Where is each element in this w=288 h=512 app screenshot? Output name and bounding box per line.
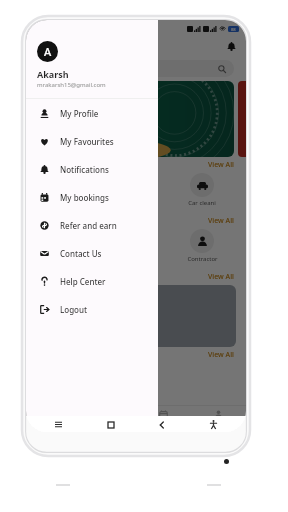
staticText: Home: [45, 421, 63, 429]
button[interactable]: Logout: [26, 295, 158, 323]
staticText: View All: [208, 160, 234, 170]
button[interactable]: Painter: [44, 173, 96, 207]
button[interactable]: View All: [208, 272, 234, 282]
button[interactable]: My Profile: [26, 99, 158, 127]
button[interactable]: [38, 60, 234, 77]
button[interactable]: Notifications: [26, 155, 158, 183]
staticText: Account: [207, 421, 230, 429]
button[interactable]: View All: [208, 216, 234, 226]
staticText: Contact Us: [60, 248, 102, 259]
staticText: Notifications: [60, 164, 109, 175]
staticText: My Favourites: [60, 136, 114, 147]
staticText: View All: [208, 272, 234, 282]
button[interactable]: Home: [26, 410, 81, 429]
button[interactable]: This Weekend: [36, 81, 234, 157]
button[interactable]: Back: [155, 418, 168, 431]
button[interactable]: [36, 285, 133, 347]
staticText: View All: [208, 216, 234, 226]
button[interactable]: View All: [208, 160, 234, 170]
button[interactable]: Home: [104, 418, 117, 431]
button[interactable]: Bookings: [136, 410, 191, 429]
button[interactable]: View All: [208, 350, 234, 360]
button[interactable]: Account: [191, 410, 246, 429]
button[interactable]: Plumber: [44, 229, 96, 263]
staticText: Help Center: [60, 276, 106, 287]
staticText: Search: [99, 421, 118, 429]
button[interactable]: My bookings: [26, 183, 158, 211]
staticText: Contractor: [187, 255, 218, 263]
button[interactable]: Cleaning: [110, 173, 162, 207]
staticText: 88: [231, 27, 236, 32]
staticText: Plumber: [58, 255, 83, 263]
button[interactable]: Refer and earn: [26, 211, 158, 239]
button[interactable]: Contact Us: [26, 239, 158, 267]
button[interactable]: Notifications: [224, 39, 238, 53]
button[interactable]: My Favourites: [26, 127, 158, 155]
button[interactable]: Contractor: [176, 229, 228, 263]
staticText: A: [44, 44, 52, 59]
staticText: Logout: [60, 304, 88, 315]
button[interactable]: Accessibility: [207, 418, 220, 431]
button[interactable]: Car cleani: [176, 173, 228, 207]
staticText: mrakarsh15@gmail.com: [37, 81, 106, 89]
staticText: View All: [208, 350, 234, 360]
button[interactable]: Help Center: [26, 267, 158, 295]
button[interactable]: Recents: [52, 418, 65, 431]
button[interactable]: Furniture: [110, 229, 162, 263]
staticText: Akarsh: [37, 68, 69, 80]
button[interactable]: Search: [81, 410, 136, 429]
staticText: My bookings: [60, 192, 109, 203]
staticText: Bookings: [150, 421, 177, 429]
staticText: Painter: [60, 199, 81, 207]
staticText: My Profile: [60, 108, 99, 119]
staticText: 30%OFF: [41, 108, 108, 131]
staticText: Refer and earn: [60, 220, 117, 231]
button[interactable]: [139, 285, 236, 347]
staticText: Car cleani: [188, 199, 216, 207]
